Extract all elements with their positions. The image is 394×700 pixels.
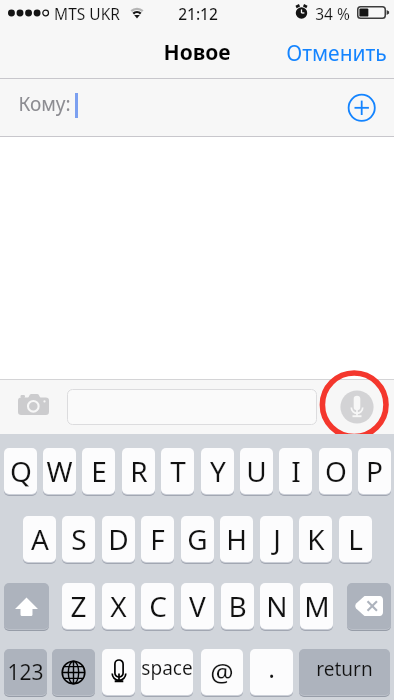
other: Change keyboard language: [61, 660, 86, 685]
button[interactable]: H: [220, 516, 253, 562]
staticText: Кому:: [18, 91, 71, 117]
staticText: Y: [210, 452, 226, 490]
button[interactable]: N: [260, 583, 293, 629]
staticText: E: [91, 452, 107, 490]
button[interactable]: Y: [201, 448, 234, 494]
staticText: H: [226, 520, 247, 558]
other: Backspace: [355, 596, 383, 616]
staticText: space: [141, 655, 193, 681]
staticText: Q: [10, 452, 32, 490]
button[interactable]: O: [319, 448, 352, 494]
button[interactable]: M: [300, 583, 333, 629]
button[interactable]: L: [339, 516, 372, 562]
button[interactable]: return: [299, 649, 390, 695]
button[interactable]: A: [23, 516, 56, 562]
staticText: 123: [7, 658, 44, 687]
button[interactable]: [67, 389, 317, 425]
button[interactable]: R: [122, 448, 155, 494]
staticText: Z: [70, 587, 87, 625]
button[interactable]: Record voice message: [340, 390, 374, 424]
staticText: B: [228, 587, 247, 625]
staticText: K: [307, 520, 325, 558]
button[interactable]: C: [141, 583, 174, 629]
staticText: A: [31, 520, 49, 558]
staticText: @: [210, 654, 234, 689]
button[interactable]: T: [161, 448, 194, 494]
button[interactable]: Change keyboard language: [52, 649, 95, 695]
button[interactable]: E: [82, 448, 115, 494]
staticText: M: [304, 587, 330, 625]
staticText: .: [268, 651, 275, 685]
button[interactable]: Q: [4, 448, 37, 494]
staticText: T: [170, 452, 186, 490]
button[interactable]: B: [221, 583, 254, 629]
staticText: O: [325, 452, 347, 490]
staticText: F: [150, 520, 165, 558]
staticText: S: [71, 520, 87, 558]
button[interactable]: Add recipient: [346, 93, 376, 123]
staticText: R: [130, 452, 148, 490]
staticText: D: [108, 520, 129, 558]
button[interactable]: Dictation: [102, 649, 135, 695]
staticText: G: [187, 520, 208, 558]
staticText: N: [266, 587, 288, 625]
button[interactable]: Backspace: [347, 583, 391, 629]
staticText: X: [110, 587, 127, 625]
staticText: P: [366, 452, 383, 490]
button[interactable]: X: [102, 583, 135, 629]
staticText: Отменить: [286, 39, 387, 66]
staticText: 34 %: [315, 3, 350, 24]
button[interactable]: Shift: [4, 583, 49, 629]
other: Shift: [15, 597, 38, 616]
button[interactable]: I: [279, 448, 312, 494]
staticText: L: [348, 520, 363, 558]
button[interactable]: D: [102, 516, 135, 562]
button[interactable]: J: [260, 516, 293, 562]
staticText: MTS UKR: [54, 3, 120, 24]
button[interactable]: K: [299, 516, 332, 562]
staticText: V: [189, 587, 206, 625]
staticText: I: [291, 452, 301, 490]
button[interactable]: Camera: [18, 394, 49, 415]
other: Dictation: [112, 660, 126, 684]
button[interactable]: .: [250, 649, 293, 695]
button[interactable]: S: [62, 516, 95, 562]
staticText: W: [46, 452, 73, 490]
button[interactable]: W: [43, 448, 76, 494]
button[interactable]: F: [141, 516, 174, 562]
button[interactable]: U: [240, 448, 273, 494]
button[interactable]: V: [181, 583, 214, 629]
button[interactable]: P: [358, 448, 391, 494]
staticText: 21:12: [178, 3, 218, 24]
staticText: J: [273, 520, 281, 558]
button[interactable]: Отменить: [272, 26, 394, 79]
staticText: C: [149, 587, 167, 625]
staticText: Новое: [163, 38, 231, 67]
staticText: return: [316, 656, 373, 682]
button[interactable]: G: [181, 516, 214, 562]
staticText: U: [246, 452, 267, 490]
button[interactable]: 123: [4, 649, 47, 695]
button[interactable]: @: [201, 649, 243, 695]
button[interactable]: space: [141, 649, 193, 695]
button[interactable]: Z: [62, 583, 95, 629]
